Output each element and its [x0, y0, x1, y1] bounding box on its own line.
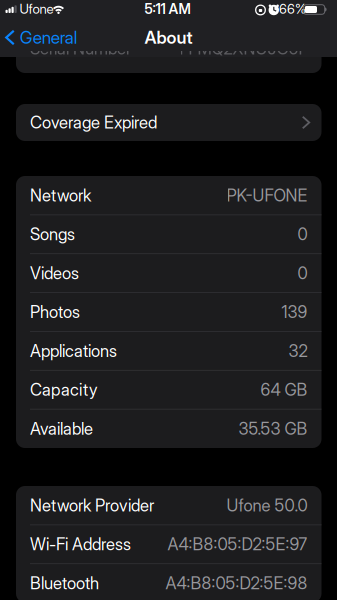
staticText: Songs — [30, 224, 75, 244]
staticText: PK-UFONE — [226, 185, 307, 205]
button[interactable]: Coverage Expired — [16, 104, 321, 141]
staticText: Network Provider — [30, 495, 154, 515]
staticText: Bluetooth — [30, 573, 99, 593]
staticText: 5:11 AM — [144, 0, 190, 17]
staticText: A4:B8:05:D2:5E:98 — [165, 573, 307, 593]
staticText: Available — [30, 418, 93, 439]
staticText: Coverage Expired — [30, 112, 157, 133]
staticText: Network — [30, 185, 91, 205]
button[interactable]: Back to General — [6, 27, 78, 48]
staticText: General — [20, 27, 78, 48]
staticText: 66% — [279, 1, 306, 17]
staticText: 35.53 GB — [238, 418, 307, 439]
staticText: FFMQ2XNUJC6F — [179, 38, 307, 58]
staticText: A4:B8:05:D2:5E:97 — [167, 534, 307, 554]
staticText: Applications — [30, 341, 117, 361]
staticText: Wi-Fi Address — [30, 534, 131, 554]
staticText: Videos — [30, 263, 79, 283]
staticText: Ufone — [19, 1, 53, 17]
staticText: 0 — [297, 224, 307, 244]
staticText: Ufone 50.0 — [226, 495, 307, 515]
staticText: 139 — [281, 302, 307, 322]
staticText: 64 GB — [260, 380, 307, 400]
staticText: About — [144, 27, 192, 48]
staticText: Photos — [30, 302, 80, 322]
staticText: Serial Number — [30, 38, 131, 58]
staticText: Capacity — [30, 380, 98, 400]
staticText: 0 — [297, 263, 307, 283]
staticText: 32 — [288, 341, 307, 361]
